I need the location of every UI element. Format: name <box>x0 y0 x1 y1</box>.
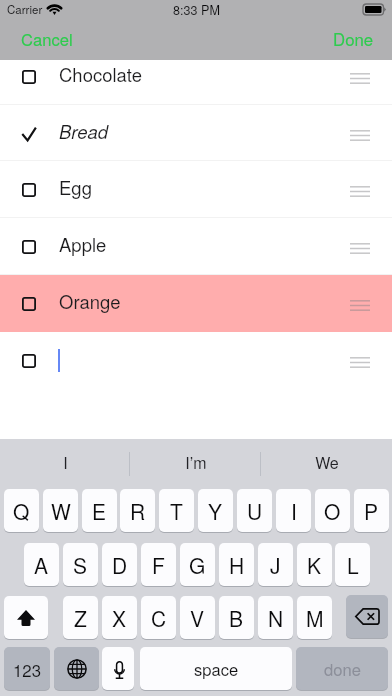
staticText: Q <box>13 496 30 526</box>
staticText: D <box>112 550 128 580</box>
button[interactable]: Y <box>198 489 233 532</box>
button[interactable]: Bread <box>0 105 392 162</box>
staticText: We <box>315 451 339 474</box>
button[interactable]: Backspace <box>346 595 388 638</box>
staticText: done <box>324 657 361 681</box>
staticText: H <box>229 550 245 580</box>
staticText: R <box>130 496 146 526</box>
staticText: P <box>364 496 379 526</box>
staticText: Y <box>208 496 223 526</box>
button[interactable]: P <box>354 489 389 532</box>
button[interactable]: S <box>63 543 98 586</box>
button[interactable]: Dictate <box>102 647 134 690</box>
staticText: A <box>34 550 49 580</box>
button[interactable]: V <box>180 596 215 639</box>
button[interactable]: I <box>276 489 311 532</box>
staticText: 8:33 PM <box>173 1 220 19</box>
button[interactable]: X <box>102 596 137 639</box>
button[interactable]: L <box>335 543 370 586</box>
button[interactable]: O <box>315 489 350 532</box>
staticText: S <box>73 550 88 580</box>
staticText: J <box>270 550 281 580</box>
button[interactable]: K <box>297 543 332 586</box>
button[interactable]: Reorder <box>341 119 379 149</box>
button[interactable]: 123 <box>4 647 50 690</box>
button[interactable]: Cancel <box>9 21 85 57</box>
staticText: I <box>291 496 297 526</box>
staticText: X <box>112 603 127 633</box>
button[interactable]: Change keyboard <box>54 647 99 690</box>
button[interactable]: D <box>102 543 137 586</box>
button[interactable]: A <box>24 543 59 586</box>
button[interactable]: J <box>258 543 293 586</box>
staticText: C <box>151 603 167 633</box>
button[interactable]: Q <box>4 489 39 532</box>
button[interactable]: I <box>0 439 130 489</box>
button[interactable]: F <box>141 543 176 586</box>
staticText: F <box>152 550 165 580</box>
staticText: Carrier <box>7 1 43 18</box>
button[interactable]: Reorder <box>341 62 379 92</box>
staticText: U <box>247 496 263 526</box>
button[interactable]: N <box>258 596 293 639</box>
staticText: Chocolate <box>59 61 143 87</box>
button[interactable]: Reorder <box>341 232 379 262</box>
button[interactable]: M <box>297 596 332 639</box>
button[interactable]: Egg <box>0 161 392 218</box>
button[interactable]: R <box>120 489 155 532</box>
staticText: space <box>194 657 239 681</box>
button[interactable]: Z <box>63 596 98 639</box>
button[interactable]: Reorder <box>0 332 392 389</box>
staticText: Done <box>333 27 374 51</box>
button[interactable]: Apple <box>0 218 392 275</box>
staticText: K <box>307 550 322 580</box>
staticText: W <box>51 496 71 526</box>
staticText: N <box>268 603 284 633</box>
staticText: Apple <box>59 231 107 257</box>
staticText: T <box>170 496 183 526</box>
staticText: G <box>189 550 206 580</box>
button[interactable]: Reorder <box>341 346 379 376</box>
button[interactable]: G <box>180 543 215 586</box>
button[interactable]: Shift <box>4 596 48 639</box>
staticText: 123 <box>13 658 42 682</box>
button[interactable]: Reorder <box>341 175 379 205</box>
button[interactable]: space <box>140 647 292 690</box>
staticText: Orange <box>59 288 121 314</box>
staticText: L <box>347 550 359 580</box>
button[interactable]: We <box>261 439 392 489</box>
staticText: O <box>324 496 341 526</box>
button[interactable]: done <box>296 647 388 690</box>
button[interactable]: C <box>141 596 176 639</box>
staticText: Bread <box>59 118 109 144</box>
staticText: Z <box>74 603 87 633</box>
button[interactable]: E <box>82 489 117 532</box>
button[interactable]: Reorder <box>341 289 379 319</box>
staticText: B <box>229 603 244 633</box>
button[interactable]: Chocolate <box>0 48 392 105</box>
staticText: I’m <box>185 451 207 474</box>
button[interactable]: I’m <box>130 439 261 489</box>
button[interactable]: U <box>237 489 272 532</box>
button[interactable]: Done <box>321 21 386 57</box>
button[interactable]: W <box>43 489 78 532</box>
staticText: M <box>306 603 324 633</box>
button[interactable]: H <box>219 543 254 586</box>
button[interactable]: B <box>219 596 254 639</box>
staticText: Cancel <box>21 27 73 51</box>
button[interactable]: Orange <box>0 275 392 332</box>
staticText: Egg <box>59 174 92 200</box>
staticText: E <box>92 496 107 526</box>
staticText: I <box>63 451 68 474</box>
button[interactable]: T <box>159 489 194 532</box>
staticText: V <box>190 603 205 633</box>
